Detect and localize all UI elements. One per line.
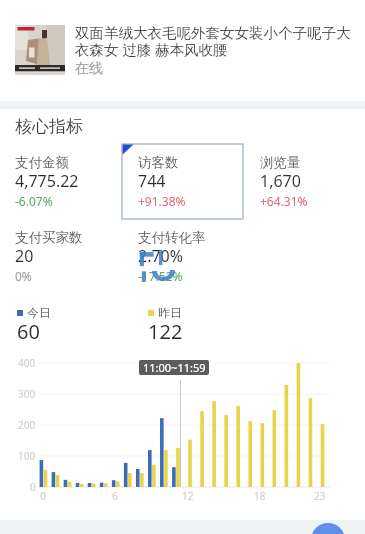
staticText: 18: [254, 489, 266, 503]
staticText: -6.07%: [15, 193, 53, 209]
staticText: +64.31%: [260, 193, 308, 209]
staticText: 200: [18, 418, 36, 432]
staticText: 1,670: [260, 170, 301, 192]
button[interactable]: [122, 144, 243, 219]
button[interactable]: 今日: [17, 305, 107, 343]
staticText: 支付买家数: [15, 229, 83, 246]
staticText: 2.70%: [138, 245, 184, 267]
staticText: 核心指标: [15, 116, 83, 137]
button[interactable]: 双面羊绒大衣毛呢外套女女装小个子呢子大衣森女 过膝 赫本风收腰: [0, 0, 365, 101]
staticText: 0%: [15, 268, 32, 284]
staticText: 0: [30, 480, 36, 494]
staticText: 100: [18, 449, 36, 463]
staticText: 4,775.22: [15, 170, 79, 192]
staticText: 12: [182, 489, 194, 503]
staticText: 11:00~11:59: [143, 360, 206, 375]
staticText: 支付转化率: [138, 229, 206, 246]
staticText: 0: [40, 489, 46, 503]
staticText: 23: [314, 489, 326, 503]
staticText: 6: [112, 489, 118, 503]
button[interactable]: Add: [311, 523, 345, 534]
button[interactable]: 支付买家数: [15, 229, 125, 287]
staticText: 今日: [27, 305, 51, 320]
staticText: 昨日: [158, 305, 182, 320]
staticText: 400: [18, 356, 36, 370]
staticText: 300: [18, 387, 36, 401]
button[interactable]: 浏览量: [260, 154, 365, 212]
button[interactable]: 访客数: [138, 154, 248, 212]
staticText: 744: [138, 170, 166, 192]
staticText: -17.52%: [138, 268, 183, 284]
button[interactable]: 支付金额: [15, 154, 125, 212]
staticText: 在线: [75, 60, 103, 78]
staticText: 20: [15, 245, 34, 267]
staticText: 浏览量: [260, 154, 301, 171]
staticText: 60: [17, 318, 40, 345]
staticText: 访客数: [138, 154, 179, 171]
staticText: +91.38%: [138, 193, 186, 209]
staticText: 支付金额: [15, 154, 69, 171]
staticText: 双面羊绒大衣毛呢外套女女装小个子呢子大衣森女 过膝 赫本风收腰: [75, 24, 353, 60]
staticText: 122: [148, 318, 183, 345]
button[interactable]: 昨日: [148, 305, 238, 343]
button[interactable]: 支付转化率: [138, 229, 248, 287]
